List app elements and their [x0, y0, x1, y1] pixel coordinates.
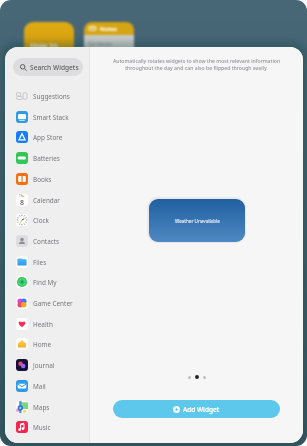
staticText: Music	[33, 423, 51, 432]
staticText: Game Center	[33, 299, 73, 308]
staticText: Maps	[33, 403, 50, 412]
staticText: Journal	[33, 361, 55, 370]
staticText: Contacts	[33, 237, 60, 246]
staticText: Files	[33, 258, 47, 267]
staticText: Books	[33, 175, 52, 184]
staticText: Weather Unavailable	[175, 218, 220, 224]
button[interactable]: Game Center	[5, 293, 89, 313]
button[interactable]: Thu	[5, 190, 89, 210]
button[interactable]: Health	[5, 314, 89, 334]
button[interactable]: How to	[24, 22, 74, 56]
button[interactable]: Notes	[84, 22, 134, 57]
button[interactable]: Add Widget	[113, 400, 280, 418]
staticText: Home	[33, 340, 52, 349]
button[interactable]: Journal	[5, 355, 89, 375]
staticText: Search Widgets	[30, 63, 79, 72]
button[interactable]: Books	[5, 169, 89, 189]
button[interactable]: Find My	[5, 272, 89, 292]
staticText: Notes	[100, 25, 117, 33]
staticText: Thu	[19, 194, 25, 198]
staticText: Batteries	[33, 154, 60, 163]
button[interactable]: Home	[5, 334, 89, 354]
staticText: Find My	[33, 278, 57, 287]
staticText: Automatically rotates widgets to show th…	[103, 57, 290, 72]
staticText: No Notes	[88, 40, 113, 47]
staticText: 8	[20, 198, 25, 206]
button[interactable]: Weather Unavailable	[149, 199, 245, 242]
button[interactable]: Contacts	[5, 231, 89, 251]
button[interactable]: Mail	[5, 376, 89, 396]
button[interactable]: Music	[5, 417, 89, 437]
staticText: How to	[30, 40, 58, 51]
button[interactable]: Clock	[5, 210, 89, 230]
staticText: Calendar	[33, 196, 60, 205]
button[interactable]: Files	[5, 252, 89, 272]
button[interactable]: Maps	[5, 397, 89, 417]
staticText: Add Widget	[183, 405, 220, 414]
button[interactable]: Smart Stack	[5, 107, 89, 127]
button[interactable]: Search Widgets	[13, 58, 83, 76]
staticText: Smart Stack	[33, 113, 69, 122]
staticText: Mail	[33, 382, 46, 391]
button[interactable]: Batteries	[5, 148, 89, 168]
staticText: Clock	[33, 216, 50, 225]
button[interactable]: App Store	[5, 127, 89, 147]
button[interactable]: Suggestions	[5, 86, 89, 106]
staticText: Health	[33, 320, 53, 329]
staticText: Suggestions	[33, 92, 70, 101]
staticText: App Store	[33, 133, 63, 142]
